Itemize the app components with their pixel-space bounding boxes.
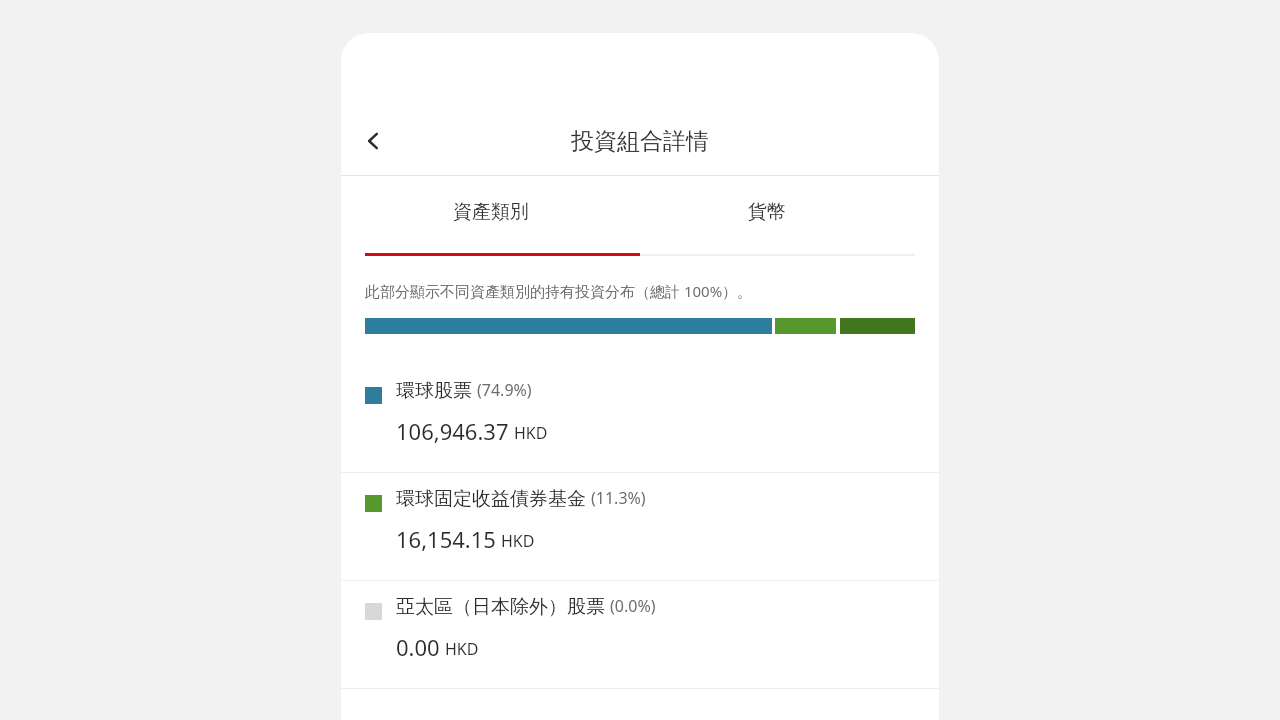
button[interactable]: Back [349, 117, 397, 165]
staticText: 環球股票 [396, 379, 472, 403]
staticText: 亞太區（日本除外）股票 [396, 595, 605, 619]
button[interactable]: 資產類別 [341, 176, 640, 256]
staticText: 環球固定收益債券基金 [396, 487, 586, 511]
button[interactable]: 貨幣 [640, 176, 939, 256]
button[interactable]: 環球股票 [341, 365, 939, 472]
staticText: (0.0%) [610, 595, 656, 617]
button[interactable]: 亞太區（日本除外）股票 [341, 581, 939, 688]
staticText: 投資組合詳情 [341, 127, 939, 156]
staticText: 106,946.37 [396, 416, 509, 446]
staticText: HKD [445, 638, 479, 660]
staticText: 貨幣 [748, 200, 786, 224]
staticText: (11.3%) [591, 487, 646, 509]
button[interactable]: 環球固定收益債券基金 [341, 473, 939, 580]
staticText: 0.00 [396, 632, 440, 662]
staticText: (74.9%) [477, 379, 532, 401]
staticText: 此部分顯示不同資產類別的持有投資分布（總計 100%）。 [365, 281, 753, 301]
staticText: HKD [514, 422, 548, 444]
staticText: HKD [501, 530, 535, 552]
staticText: 16,154.15 [396, 524, 496, 554]
staticText: 資產類別 [453, 200, 529, 224]
